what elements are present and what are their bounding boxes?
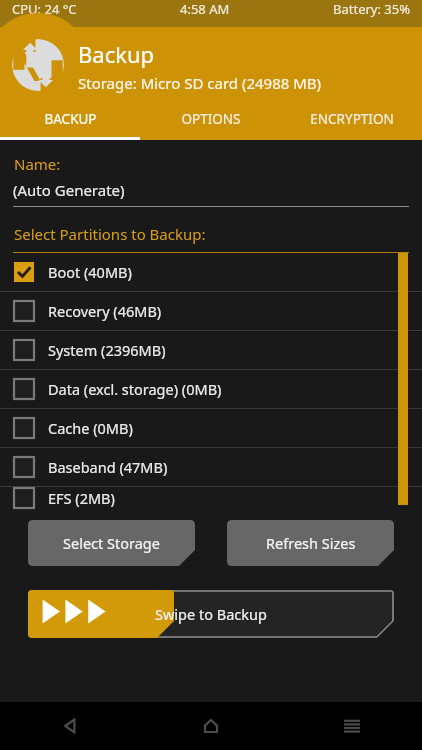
button[interactable]: System (2396MB) <box>0 331 422 369</box>
staticText: (Auto Generate) <box>13 180 125 200</box>
staticText: Data (excl. storage) (0MB) <box>48 379 222 399</box>
staticText: Name: <box>14 154 61 174</box>
staticText: Storage: Micro SD card (24988 MB) <box>78 73 322 93</box>
button[interactable]: ENCRYPTION <box>281 110 422 140</box>
staticText: System (2396MB) <box>48 340 166 360</box>
button[interactable]: Refresh Sizes <box>227 520 394 566</box>
staticText: Recovery (46MB) <box>48 301 162 321</box>
button[interactable]: Select Storage <box>28 520 195 566</box>
button[interactable]: EFS (2MB) <box>0 487 422 509</box>
staticText: Cache (0MB) <box>48 418 133 438</box>
staticText: Select Storage <box>63 533 160 553</box>
staticText: Battery: 35% <box>333 0 410 18</box>
staticText: BACKUP <box>44 110 97 128</box>
button[interactable]: Recovery (46MB) <box>0 292 422 330</box>
staticText: OPTIONS <box>181 110 241 128</box>
button[interactable]: Swipe to Backup <box>28 590 394 638</box>
button[interactable]: Cache (0MB) <box>0 409 422 447</box>
staticText: Select Partitions to Backup: <box>14 224 206 244</box>
button[interactable]: OPTIONS <box>140 110 281 140</box>
staticText: ENCRYPTION <box>310 110 394 128</box>
staticText: Swipe to Backup <box>155 604 267 624</box>
button[interactable]: Back <box>0 702 140 750</box>
staticText: Boot (40MB) <box>48 262 132 282</box>
button[interactable]: Baseband (47MB) <box>0 448 422 486</box>
button[interactable]: Menu <box>281 702 422 750</box>
button[interactable]: Home <box>140 702 281 750</box>
staticText: CPU: 24 °C <box>12 0 77 18</box>
button[interactable]: (Auto Generate) <box>13 180 409 207</box>
staticText: Baseband (47MB) <box>48 457 168 477</box>
staticText: EFS (2MB) <box>48 488 115 508</box>
button[interactable]: Data (excl. storage) (0MB) <box>0 370 422 408</box>
button[interactable]: Boot (40MB) <box>0 253 422 291</box>
staticText: Refresh Sizes <box>266 533 356 553</box>
staticText: Backup <box>78 39 155 69</box>
button[interactable]: BACKUP <box>0 110 140 140</box>
staticText: 4:58 AM <box>180 0 230 18</box>
